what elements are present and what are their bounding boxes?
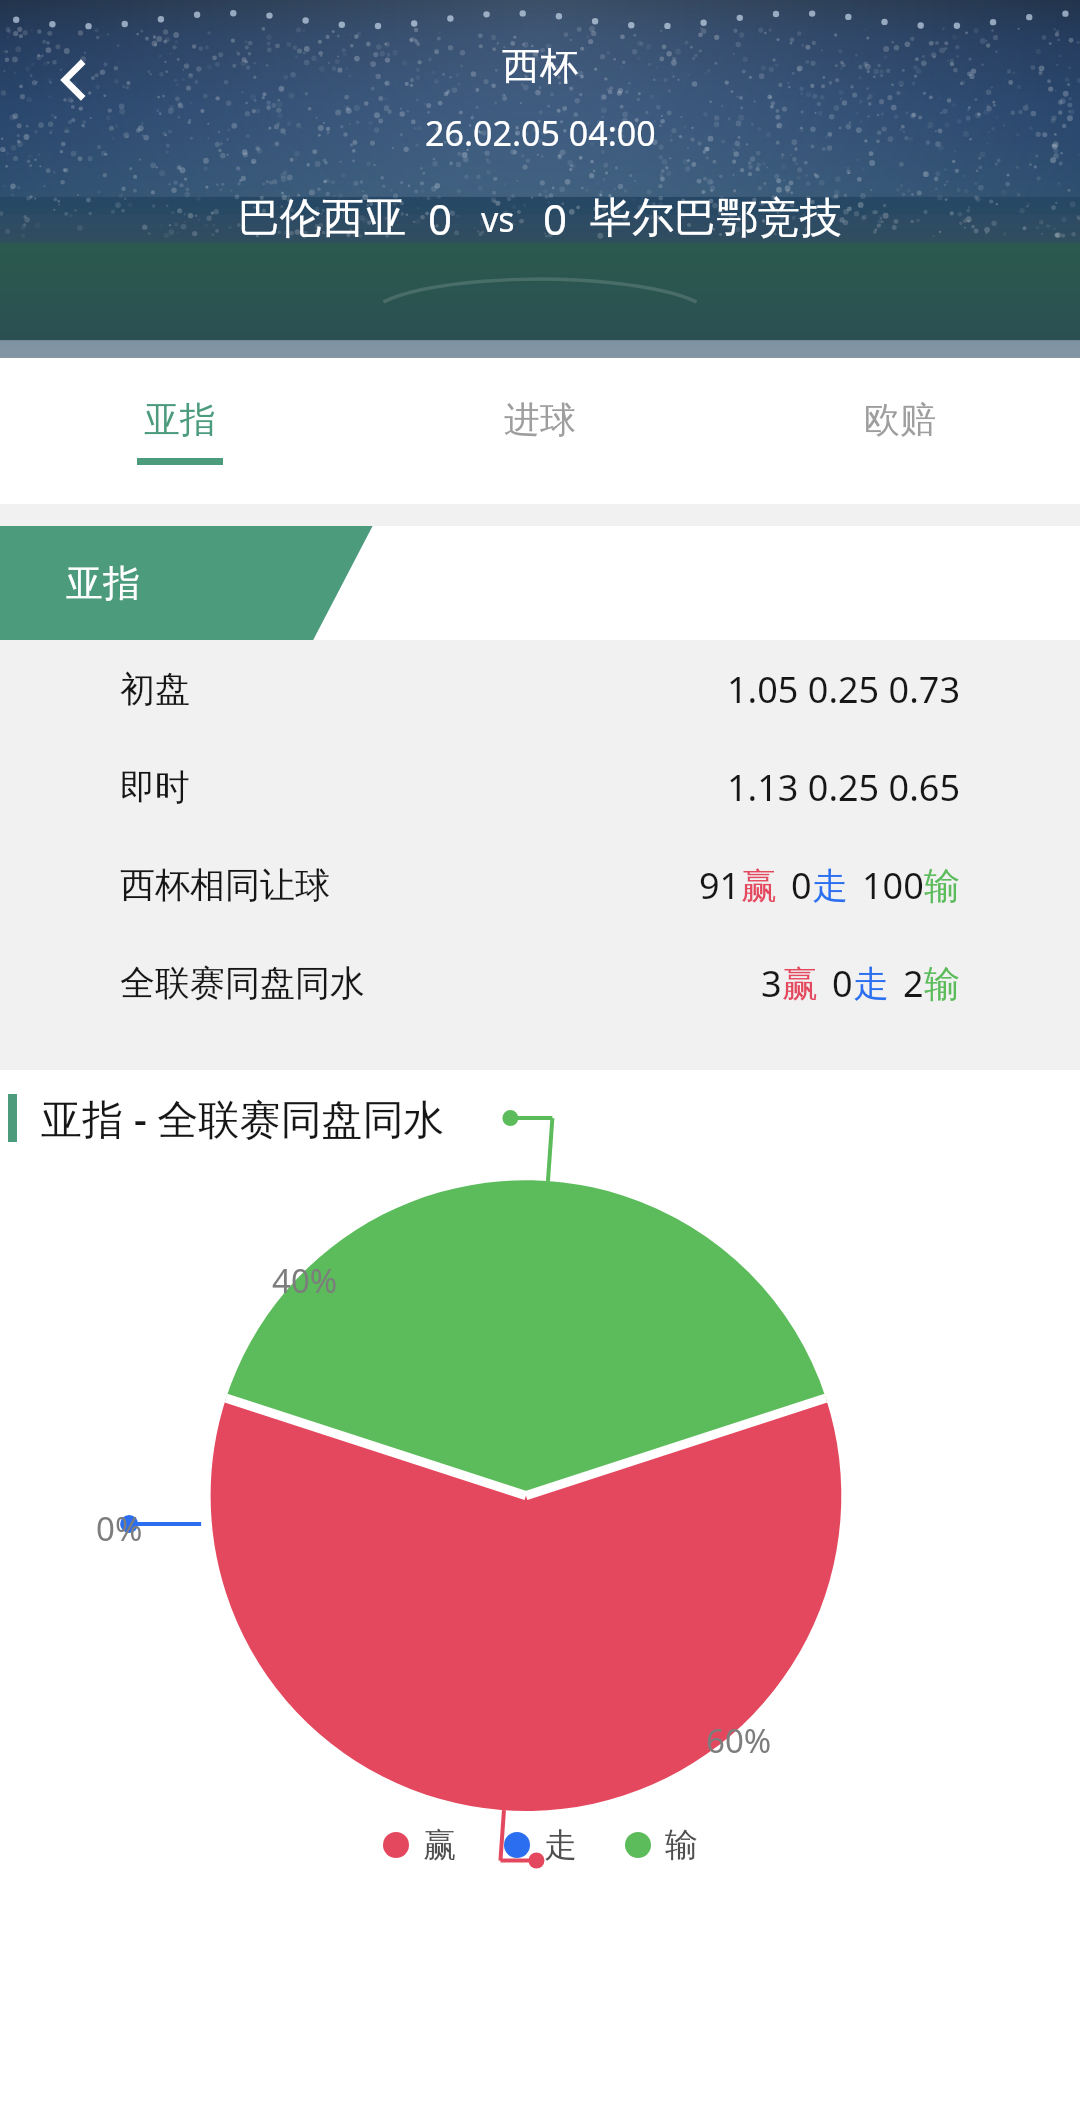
staticText: 走 bbox=[853, 961, 889, 1006]
button[interactable]: 西杯相同让球 bbox=[0, 836, 1080, 934]
staticText: 走 bbox=[812, 863, 848, 908]
staticText: 赢 bbox=[741, 863, 777, 908]
button[interactable]: Back bbox=[34, 40, 114, 120]
staticText: 输 bbox=[924, 863, 960, 908]
button[interactable]: 全联赛同盘同水 bbox=[0, 934, 1080, 1032]
staticText: 输 bbox=[665, 1824, 698, 1866]
staticText: 进球 bbox=[504, 397, 576, 442]
button[interactable]: 欧赔 bbox=[720, 358, 1080, 504]
staticText: 赢 bbox=[782, 961, 818, 1006]
staticText: 亚指 bbox=[66, 560, 140, 607]
button[interactable]: 走 bbox=[504, 1824, 577, 1866]
staticText: 91 bbox=[699, 861, 741, 910]
staticText: 40% bbox=[272, 1258, 338, 1303]
staticText: 亚指 bbox=[144, 397, 216, 442]
button[interactable]: 进球 bbox=[360, 358, 720, 504]
staticText: 走 bbox=[544, 1824, 577, 1866]
staticText: 1.05 0.25 0.73 bbox=[727, 665, 960, 714]
staticText: 3 bbox=[761, 959, 782, 1008]
button[interactable]: 赢 bbox=[383, 1824, 456, 1866]
staticText: 0% bbox=[96, 1506, 143, 1551]
staticText: 0 bbox=[791, 861, 812, 910]
staticText: 毕尔巴鄂竞技 bbox=[590, 192, 842, 245]
staticText: 0 bbox=[428, 190, 453, 247]
staticText: 西杯相同让球 bbox=[120, 863, 330, 907]
staticText: 西杯 bbox=[502, 42, 578, 90]
staticText: 1.13 0.25 0.65 bbox=[727, 763, 960, 812]
staticText: 初盘 bbox=[120, 667, 190, 711]
staticText: 巴伦西亚 bbox=[238, 192, 406, 245]
button[interactable]: 输 bbox=[625, 1824, 698, 1866]
staticText: 0 bbox=[832, 959, 853, 1008]
staticText: 全联赛同盘同水 bbox=[120, 961, 365, 1005]
staticText: vs bbox=[481, 196, 515, 242]
staticText: 26.02.05 04:00 bbox=[425, 110, 656, 156]
staticText: 欧赔 bbox=[864, 397, 936, 442]
staticText: 60% bbox=[706, 1718, 772, 1763]
staticText: 赢 bbox=[423, 1824, 456, 1866]
staticText: 亚指 - 全联赛同盘同水 bbox=[41, 1090, 445, 1146]
staticText: 输 bbox=[924, 961, 960, 1006]
button[interactable]: 初盘 bbox=[0, 640, 1080, 738]
staticText: 2 bbox=[903, 959, 924, 1008]
button[interactable]: 亚指 bbox=[0, 358, 360, 504]
staticText: 0 bbox=[543, 190, 568, 247]
button[interactable]: 即时 bbox=[0, 738, 1080, 836]
staticText: 即时 bbox=[120, 765, 190, 809]
staticText: 100 bbox=[862, 861, 924, 910]
